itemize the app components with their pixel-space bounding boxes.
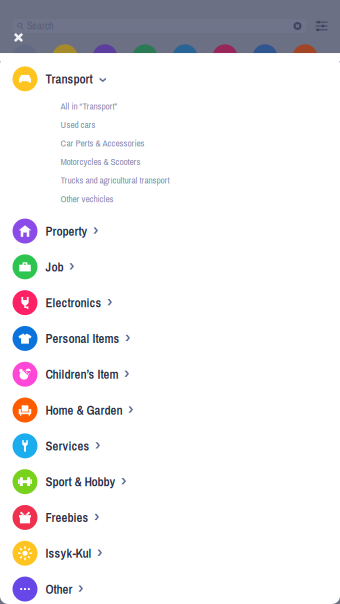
button[interactable]: Services <box>0 428 340 464</box>
button[interactable]: Transport <box>0 61 340 97</box>
button[interactable]: Issyk-Kul <box>0 535 340 571</box>
button[interactable]: Children’s Item <box>0 356 340 392</box>
button[interactable]: Motorcycles & Scooters <box>60 152 340 171</box>
staticText: Motorcycles & Scooters <box>60 155 140 168</box>
staticText: Sport & Hobby <box>45 473 115 490</box>
staticText: Electronics <box>45 294 101 311</box>
button[interactable]: Personal Items <box>0 321 340 356</box>
staticText: Freebies <box>45 509 88 526</box>
button[interactable]: Sport & Hobby <box>0 464 340 500</box>
staticText: All in “Transport” <box>60 100 117 112</box>
button[interactable]: Electronics <box>0 285 340 321</box>
staticText: Home & Garden <box>45 401 122 419</box>
button[interactable]: Property <box>0 213 340 249</box>
staticText: Used cars <box>60 118 95 131</box>
staticText: Children’s Item <box>45 366 118 383</box>
button[interactable]: Job <box>0 249 340 285</box>
button[interactable]: Used cars <box>60 115 340 134</box>
staticText: Job <box>45 258 63 275</box>
staticText: Personal Items <box>45 330 119 347</box>
button[interactable]: Other <box>0 571 340 604</box>
button[interactable]: All in “Transport” <box>60 97 340 115</box>
staticText: Issyk-Kul <box>45 545 91 562</box>
staticText: Trucks and agricultural transport <box>60 174 169 186</box>
staticText: Transport <box>45 70 92 87</box>
staticText: Other <box>45 580 72 598</box>
button[interactable]: Car Perts & Accessories <box>60 134 340 152</box>
button[interactable]: Trucks and agricultural transport <box>60 171 340 189</box>
button[interactable]: Filters <box>309 17 333 35</box>
staticText: Services <box>45 437 89 454</box>
staticText: Search <box>27 19 54 33</box>
staticText: Car Perts & Accessories <box>60 137 144 149</box>
button[interactable]: Freebies <box>0 500 340 535</box>
staticText: Other vechicles <box>60 192 113 205</box>
button[interactable]: Close <box>9 28 28 47</box>
button[interactable]: Home & Garden <box>0 392 340 428</box>
button[interactable]: Other vechicles <box>60 189 340 208</box>
staticText: Property <box>45 222 87 240</box>
